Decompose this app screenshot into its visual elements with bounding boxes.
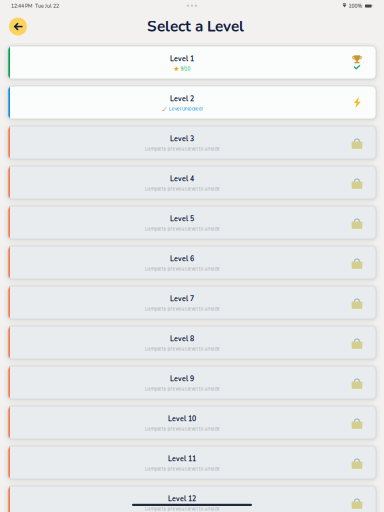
staticText: Level 9: [170, 374, 194, 384]
staticText: 9/10: [180, 66, 190, 72]
button[interactable]: Back: [7, 15, 29, 37]
staticText: Complete previous level to unlock!: [144, 266, 219, 272]
staticText: Level 3: [170, 134, 194, 144]
staticText: Complete previous level to unlock!: [144, 466, 219, 472]
button[interactable]: Level 1: [0, 46, 384, 79]
button[interactable]: Level 5: [0, 206, 384, 239]
staticText: Complete previous level to unlock!: [144, 226, 219, 232]
button[interactable]: Level 2: [0, 86, 384, 119]
staticText: Level 12: [168, 494, 196, 504]
staticText: Tue Jul 22: [35, 2, 59, 9]
staticText: Level Unlocked!: [169, 106, 203, 112]
staticText: Level 8: [170, 334, 194, 344]
button[interactable]: Level 10: [0, 406, 384, 439]
staticText: Complete previous level to unlock!: [144, 426, 219, 432]
button[interactable]: Level 9: [0, 366, 384, 399]
button[interactable]: Level 11: [0, 446, 384, 479]
staticText: • • •: [186, 2, 197, 10]
staticText: Level 6: [170, 254, 194, 264]
button[interactable]: Level 4: [0, 166, 384, 199]
staticText: Complete previous level to unlock!: [144, 346, 219, 352]
staticText: Level 2: [170, 94, 194, 104]
staticText: Complete previous level to unlock!: [144, 506, 219, 512]
staticText: Complete previous level to unlock!: [144, 306, 219, 312]
button[interactable]: Level 6: [0, 246, 384, 279]
button[interactable]: Level 3: [0, 126, 384, 159]
staticText: Level 1: [170, 54, 194, 64]
staticText: Level 10: [168, 414, 196, 424]
staticText: Level 7: [170, 294, 194, 304]
staticText: 100%: [348, 2, 362, 9]
staticText: Select a Level: [147, 16, 244, 37]
button[interactable]: Level 8: [0, 326, 384, 359]
staticText: Complete previous level to unlock!: [144, 386, 219, 392]
button[interactable]: Level 12: [0, 486, 384, 512]
button[interactable]: Level 7: [0, 286, 384, 319]
staticText: Level 4: [170, 174, 194, 184]
staticText: Complete previous level to unlock!: [144, 186, 219, 192]
staticText: Level 5: [170, 214, 194, 224]
staticText: Complete previous level to unlock!: [144, 146, 219, 152]
staticText: 12:44 PM: [11, 2, 32, 9]
staticText: Level 11: [168, 454, 196, 464]
